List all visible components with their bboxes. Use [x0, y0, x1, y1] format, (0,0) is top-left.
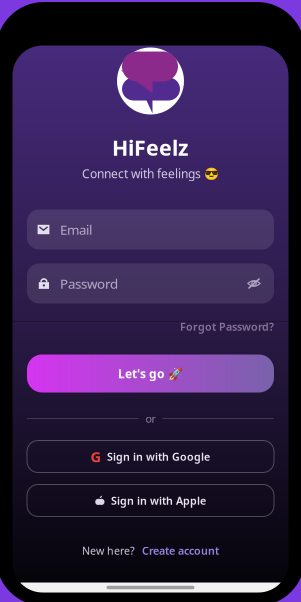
staticText: Connect with feelings 😎 [82, 165, 219, 181]
button[interactable]: Create account [142, 543, 219, 558]
staticText: Password [60, 275, 118, 292]
button[interactable]: Sign in with Apple [27, 484, 274, 516]
button[interactable]: Forgot Password? [180, 319, 274, 334]
button[interactable]: G [27, 440, 274, 472]
button[interactable]: Password [27, 263, 274, 303]
button[interactable]: Let's go 🚀 [27, 354, 274, 392]
button[interactable]: Email [27, 209, 274, 249]
staticText: HiFeelz [112, 133, 189, 162]
staticText: Forgot Password? [180, 319, 274, 334]
staticText: Sign in with Apple [111, 493, 206, 508]
staticText: Let's go 🚀 [118, 365, 183, 381]
staticText: G [90, 447, 101, 466]
staticText: Sign in with Google [107, 449, 210, 464]
staticText: or [145, 411, 155, 426]
staticText: Email [60, 221, 92, 238]
staticText: Create account [142, 543, 219, 558]
staticText: New here? [82, 543, 135, 558]
